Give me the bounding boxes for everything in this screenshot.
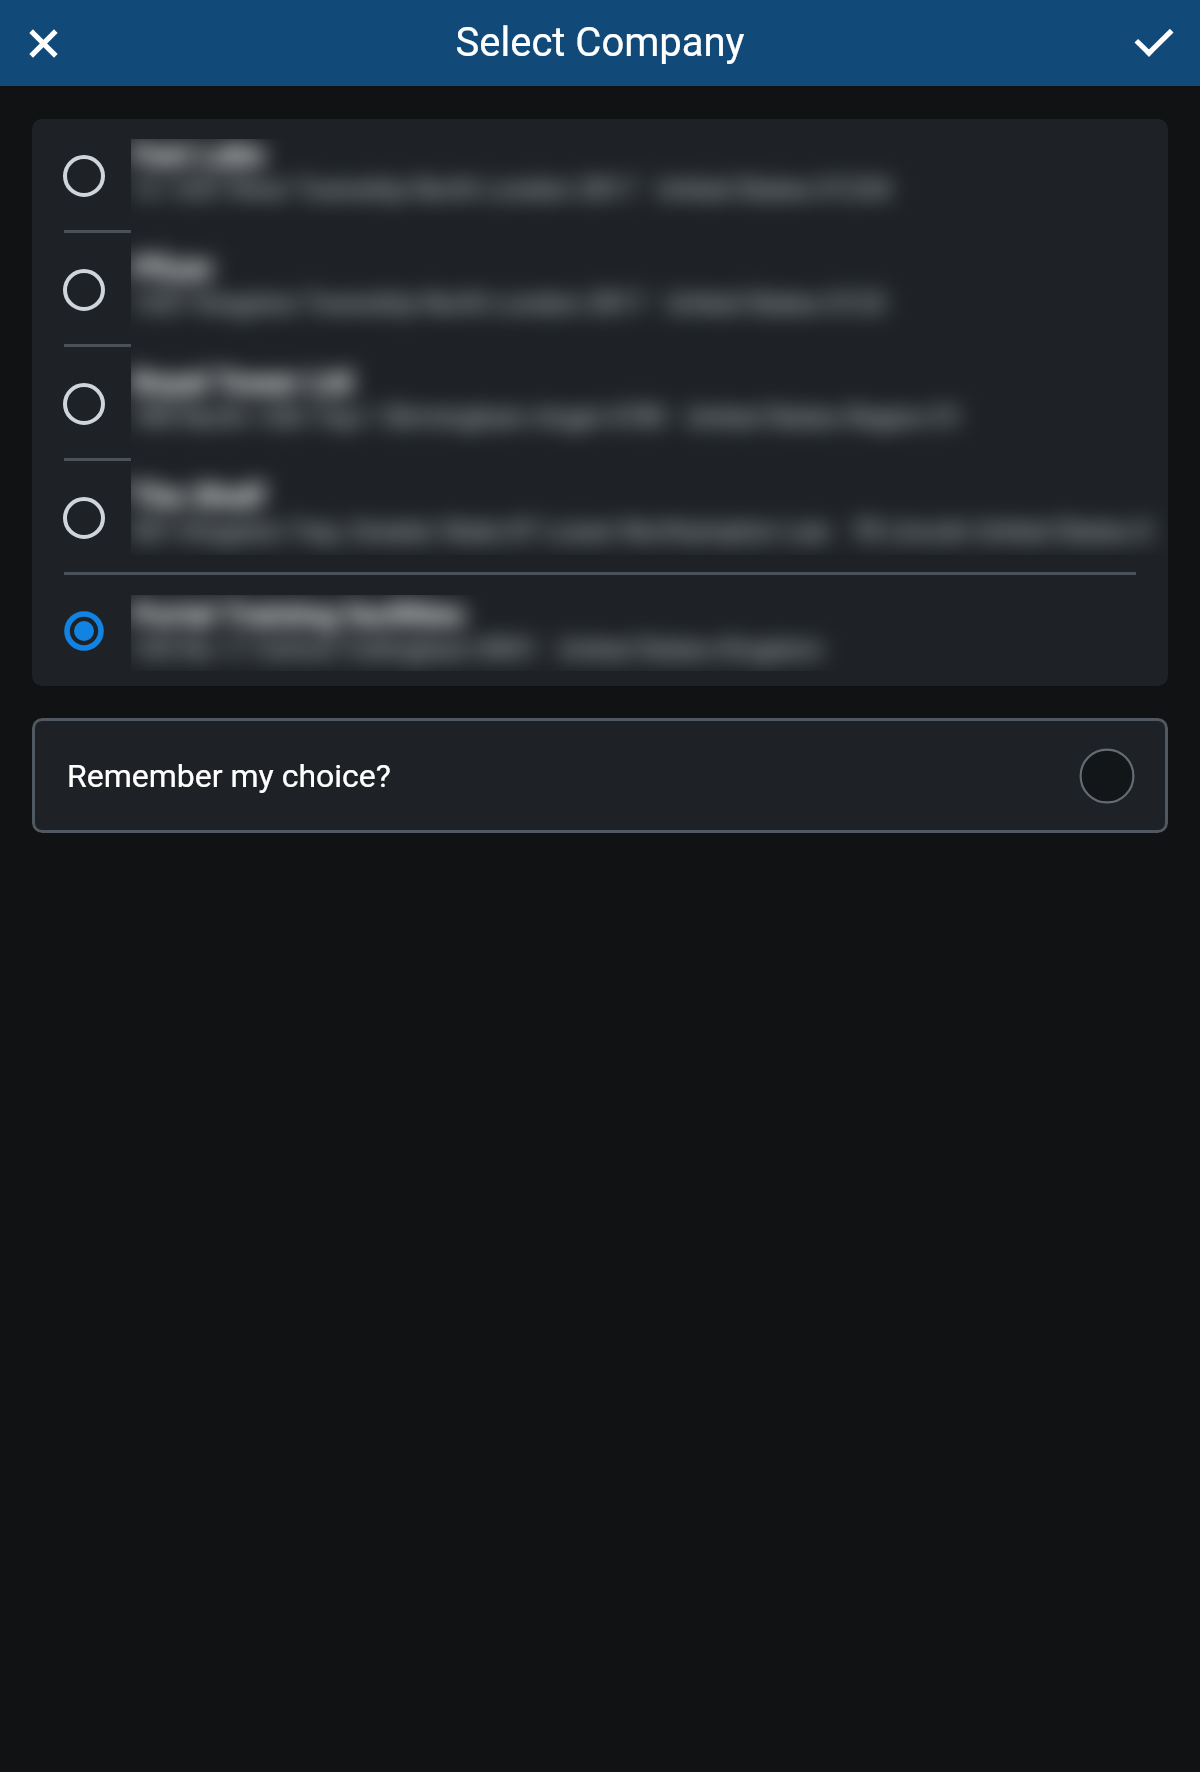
button[interactable]: Confirm selection: [1125, 14, 1183, 72]
staticText: Remember my choice?: [67, 757, 391, 795]
button[interactable]: The Shelf: [32, 461, 1168, 575]
staticText: 1207 Kingston Township North London 2817…: [131, 288, 886, 318]
staticText: 12 1207 River Township North London 2817…: [131, 174, 891, 204]
button[interactable]: Portal Training facilities: [32, 575, 1168, 686]
staticText: The Shelf: [131, 478, 265, 514]
staticText: 109 No 17 Oxford Tottingham 8901 United …: [131, 634, 823, 664]
button[interactable]: Fast Labs: [32, 119, 1168, 233]
button[interactable]: Royal Tower Ltd: [32, 347, 1168, 461]
staticText: Pfizer: [131, 250, 214, 286]
staticText: 789 North 12th Twp 1 Birmingham Angel 47…: [131, 402, 962, 432]
button[interactable]: Remember my choice?: [32, 718, 1168, 833]
staticText: Royal Tower Ltd: [131, 364, 352, 400]
staticText: Fast Labs: [131, 139, 266, 172]
button[interactable]: Pfizer: [32, 233, 1168, 347]
button[interactable]: Close: [14, 14, 72, 72]
staticText: Select Company: [455, 19, 745, 66]
staticText: Portal Training facilities: [131, 596, 465, 632]
staticText: 501 Kingston Twp, Greater State 87 Lower…: [131, 516, 1152, 546]
